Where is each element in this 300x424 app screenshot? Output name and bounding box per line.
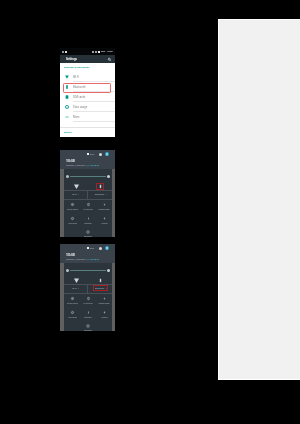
staticText: 10:38 xyxy=(107,50,113,53)
staticText: Monday, 10.08.2018 xyxy=(66,258,86,261)
staticText: No SIM card xyxy=(83,208,93,210)
staticText: Location xyxy=(101,316,108,318)
button[interactable]: Do not disturb xyxy=(64,200,80,214)
staticText: SIM cards xyxy=(73,95,86,99)
staticText: Bluetooth xyxy=(95,193,105,196)
staticText: Do not disturb xyxy=(67,208,78,210)
button[interactable]: Data usage xyxy=(60,102,115,112)
button[interactable]: Wi-Fi xyxy=(64,285,87,293)
staticText: Auto-rotate xyxy=(68,222,77,224)
button[interactable]: Do not disturb xyxy=(64,294,80,308)
staticText: Tue 08:00 xyxy=(90,258,100,261)
staticText: Settings xyxy=(84,329,92,331)
staticText: Flashlight xyxy=(84,222,92,224)
button[interactable]: Wi-Fi xyxy=(64,191,87,199)
button[interactable]: Airplane mode xyxy=(96,200,112,214)
staticText: Tue 08:00 xyxy=(90,164,100,167)
staticText: Settings xyxy=(66,57,77,61)
button[interactable]: Airplane mode xyxy=(96,294,112,308)
button[interactable]: Bluetooth xyxy=(88,277,112,284)
button[interactable]: More xyxy=(60,112,115,122)
button[interactable]: Wi-Fi xyxy=(64,183,88,190)
staticText: Airplane mode xyxy=(98,302,110,304)
staticText: Settings xyxy=(84,235,92,237)
staticText: Data usage xyxy=(73,105,88,109)
staticText: Wi-Fi xyxy=(72,193,77,196)
staticText: Airplane mode xyxy=(98,208,110,210)
staticText: Flashlight xyxy=(84,316,92,318)
button[interactable]: User profile xyxy=(105,152,109,156)
button[interactable]: Bluetooth xyxy=(88,285,112,293)
staticText: 88% xyxy=(90,153,95,156)
staticText: Bluetooth xyxy=(95,287,105,290)
staticText: Bluetooth xyxy=(73,85,86,89)
button[interactable]: Bluetooth xyxy=(88,183,112,190)
staticText: More xyxy=(73,115,80,119)
button[interactable]: Flashlight xyxy=(80,214,96,228)
button[interactable]: Auto-rotate xyxy=(64,308,80,322)
staticText: Wi-Fi xyxy=(73,75,80,79)
button[interactable]: User profile xyxy=(105,246,109,250)
button[interactable]: Bluetooth xyxy=(60,82,115,92)
staticText: DEVICE xyxy=(64,131,72,134)
staticText: Location xyxy=(101,222,108,224)
staticText: Monday, 10.08.2018 xyxy=(66,164,86,167)
staticText: Wi-Fi xyxy=(72,287,77,290)
staticText: Auto-rotate xyxy=(68,316,77,318)
staticText: 10:38 xyxy=(66,158,75,163)
button[interactable]: Search xyxy=(107,57,112,62)
button[interactable]: Wi-Fi xyxy=(64,277,88,284)
button[interactable]: No SIM card xyxy=(80,294,96,308)
staticText: WIRELESS & NETWORKS xyxy=(64,66,90,69)
button[interactable]: Bluetooth xyxy=(88,191,112,199)
staticText: 10:38 xyxy=(66,252,75,257)
button[interactable]: SIM cards xyxy=(60,92,115,102)
button[interactable]: Auto-rotate xyxy=(64,214,80,228)
button[interactable]: No SIM card xyxy=(80,200,96,214)
button[interactable]: Flashlight xyxy=(80,308,96,322)
staticText: No SIM card xyxy=(83,302,93,304)
staticText: 88% xyxy=(90,247,95,250)
staticText: 88% xyxy=(101,50,106,53)
button[interactable]: Location xyxy=(96,308,112,322)
button[interactable]: Wi-Fi xyxy=(60,72,115,82)
button[interactable]: Location xyxy=(96,214,112,228)
staticText: Do not disturb xyxy=(67,302,78,304)
